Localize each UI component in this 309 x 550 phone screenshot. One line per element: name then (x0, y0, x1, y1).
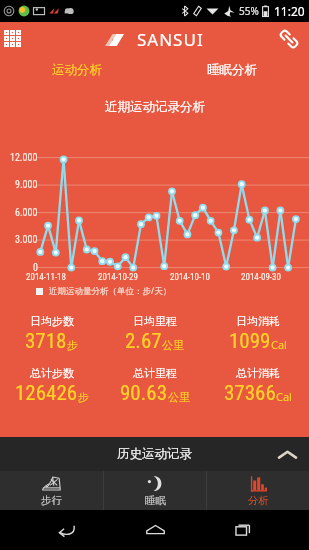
button[interactable]: 睡眠 (104, 471, 206, 510)
staticText: 步 (67, 338, 78, 352)
staticText: 睡眠 (145, 494, 166, 507)
button[interactable]: 步行 (0, 471, 103, 510)
staticText: 126426 (15, 381, 78, 406)
staticText: 2014-09-30 (241, 272, 282, 283)
staticText: 55% (239, 4, 259, 18)
staticText: 总计步数 (30, 366, 74, 380)
staticText: 2014-11-18 (26, 272, 67, 283)
staticText: 近期运动记录分析 (105, 99, 205, 115)
staticText: 日均里程 (133, 314, 177, 328)
staticText: 9.000 (15, 179, 38, 191)
staticText: 6.000 (15, 207, 38, 219)
button[interactable]: 分析 (207, 471, 309, 510)
staticText: 3718 (25, 329, 67, 354)
staticText: 历史运动记录 (117, 446, 192, 462)
button[interactable]: 运动分析 (0, 56, 154, 84)
button[interactable]: Apps (0, 22, 25, 56)
staticText: 总计消耗 (236, 366, 280, 380)
staticText: 运动分析 (52, 62, 102, 78)
staticText: 睡眠分析 (207, 62, 257, 78)
staticText: 公里 (162, 338, 184, 352)
button[interactable]: Home (133, 510, 177, 550)
staticText: 1099 (229, 329, 271, 354)
staticText: 2014-10-10 (170, 272, 211, 283)
staticText: SANSUI (137, 28, 204, 51)
staticText: Cal (271, 337, 287, 352)
staticText: 步行 (41, 494, 62, 507)
staticText: Cal (276, 389, 292, 404)
button[interactable]: 睡眠分析 (154, 56, 309, 84)
staticText: 日均消耗 (236, 314, 280, 328)
staticText: 日均步数 (30, 314, 74, 328)
staticText: 11:20 (274, 3, 305, 19)
staticText: 分析 (248, 494, 269, 507)
staticText: 近期运动量分析（单位：步/天） (49, 285, 172, 297)
staticText: 总计里程 (133, 366, 177, 380)
staticText: 12.000 (10, 152, 38, 164)
staticText: 0 (33, 262, 38, 274)
staticText: 2014-10-29 (98, 272, 139, 283)
button[interactable]: Back (44, 510, 88, 550)
staticText: 37366 (224, 381, 276, 406)
button[interactable]: 历史运动记录 (0, 437, 309, 471)
button[interactable]: Link (269, 22, 309, 56)
staticText: 90.63 (120, 381, 168, 406)
staticText: 2.67 (125, 329, 162, 354)
button[interactable]: Recents (221, 510, 265, 550)
other: Expand (279, 449, 296, 460)
staticText: 3.000 (15, 234, 38, 246)
staticText: 公里 (168, 390, 190, 404)
staticText: 步 (78, 390, 89, 404)
